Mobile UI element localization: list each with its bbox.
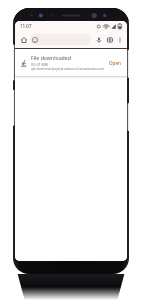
staticText: ajb-download.playerprotweau.s3.amazonaws… [31,67,104,71]
button[interactable]: More options [115,35,125,45]
button[interactable]: Search or type web address [30,34,91,45]
staticText: Open [109,60,121,66]
button[interactable]: Voice search [93,34,104,45]
staticText: File downloaded [31,54,71,61]
button[interactable]: Open [107,59,123,67]
button[interactable]: File downloaded [19,54,123,71]
button[interactable]: Home [18,34,29,45]
staticText: (53.31 MB) [31,62,48,67]
staticText: 11:07 [20,23,32,29]
button[interactable]: Search with your camera [104,34,115,45]
